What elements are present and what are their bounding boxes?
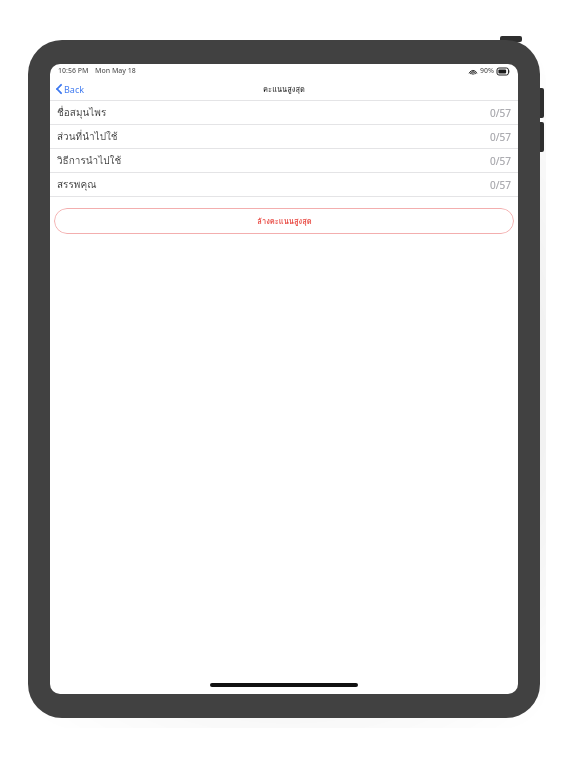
staticText: ชื่อสมุนไพร (57, 105, 107, 121)
staticText: Back (64, 83, 85, 95)
button[interactable]: Back (50, 78, 93, 100)
staticText: ล้างคะแนนสูงสุด (257, 215, 312, 227)
button[interactable]: ส่วนที่นำไปใช้ (50, 125, 518, 148)
staticText: 0/57 (490, 106, 511, 120)
staticText: 0/57 (490, 178, 511, 192)
staticText: 0/57 (490, 130, 511, 144)
staticText: 0/57 (490, 154, 511, 168)
staticText: Mon May 18 (95, 66, 136, 76)
staticText: สรรพคุณ (57, 177, 97, 193)
staticText: วิธีการนำไปใช้ (57, 153, 122, 169)
staticText: ส่วนที่นำไปใช้ (57, 129, 118, 145)
button[interactable]: ล้างคะแนนสูงสุด (54, 208, 514, 234)
button[interactable]: วิธีการนำไปใช้ (50, 149, 518, 172)
button[interactable]: ชื่อสมุนไพร (50, 101, 518, 124)
staticText: 90% (480, 66, 494, 76)
staticText: คะแนนสูงสุด (263, 83, 305, 95)
staticText: 10:56 PM (58, 66, 89, 76)
button[interactable]: สรรพคุณ (50, 173, 518, 196)
